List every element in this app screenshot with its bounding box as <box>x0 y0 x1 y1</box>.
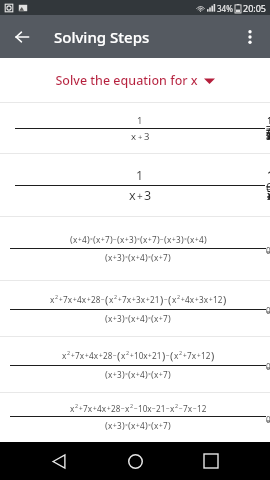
button[interactable]: Back <box>42 444 76 478</box>
staticText: + <box>101 235 105 244</box>
button[interactable]: 1 <box>0 103 270 153</box>
staticText: − <box>113 235 117 244</box>
staticText: + <box>159 314 163 323</box>
staticText: ( <box>128 251 131 264</box>
button[interactable]: More options <box>234 21 266 53</box>
staticText: 3 <box>117 313 122 324</box>
staticText: 7 <box>163 252 168 263</box>
staticText: x <box>131 369 136 380</box>
staticText: ) <box>122 368 125 381</box>
staticText: ) <box>211 348 215 363</box>
staticText: 4x <box>97 403 107 414</box>
staticText: ) <box>168 419 171 432</box>
staticText: − <box>113 351 117 360</box>
staticText: 12 <box>201 350 211 361</box>
staticText: × <box>137 236 140 243</box>
staticText: ( <box>105 251 108 264</box>
staticText: x <box>131 420 136 431</box>
staticText: ) <box>145 251 148 264</box>
staticText: + <box>148 235 152 244</box>
staticText: + <box>113 421 117 430</box>
staticText: 12 <box>197 403 207 414</box>
staticText: + <box>195 235 199 244</box>
staticText: + <box>197 351 201 360</box>
staticText: + <box>99 351 103 360</box>
staticText: × <box>148 371 151 378</box>
staticText: 2 <box>55 293 59 300</box>
button[interactable]: Solve the equation for x <box>0 58 270 102</box>
staticText: x <box>143 234 148 245</box>
staticText: + <box>113 253 117 262</box>
staticText: 34% <box>217 3 233 14</box>
staticText: 4 <box>199 234 204 245</box>
button[interactable]: 1 <box>0 154 270 216</box>
staticText: + <box>159 421 163 430</box>
staticText: ( <box>168 292 172 307</box>
staticText: ) <box>160 292 164 307</box>
staticText: x <box>131 252 136 263</box>
staticText: + <box>79 404 83 413</box>
staticText: 3 <box>117 252 122 263</box>
staticText: 2 <box>67 349 71 356</box>
staticText: 21 <box>152 350 162 361</box>
staticText: 7 <box>105 234 110 245</box>
button[interactable]: Home <box>118 444 152 478</box>
staticText: × <box>125 371 128 378</box>
button[interactable]: Back <box>6 21 38 53</box>
staticText: x <box>131 313 136 324</box>
staticText: + <box>136 370 140 379</box>
staticText: x <box>174 350 179 361</box>
staticText: + <box>113 370 117 379</box>
staticText: x <box>50 294 55 305</box>
staticText: + <box>137 189 143 203</box>
staticText: ) <box>204 233 207 246</box>
staticText: + <box>107 404 111 413</box>
staticText: 28 <box>103 350 113 361</box>
staticText: x <box>62 350 67 361</box>
staticText: x <box>129 187 136 204</box>
button[interactable]: ( <box>0 217 270 280</box>
staticText: − <box>166 351 170 360</box>
staticText: 4x <box>89 350 99 361</box>
staticText: − <box>121 404 125 413</box>
staticText: 3x <box>136 294 146 305</box>
staticText: + <box>159 253 163 262</box>
button[interactable]: x <box>0 393 270 442</box>
staticText: x <box>108 420 113 431</box>
staticText: ) <box>223 292 227 307</box>
button[interactable]: x <box>0 337 270 392</box>
button[interactable]: Recent apps <box>194 444 228 478</box>
staticText: ) <box>110 233 113 246</box>
staticText: ( <box>128 419 131 432</box>
staticText: × <box>184 236 187 243</box>
staticText: − <box>164 295 168 304</box>
staticText: 4x <box>185 294 195 305</box>
staticText: × <box>125 254 128 261</box>
staticText: x <box>109 294 114 305</box>
staticText: 4 <box>140 420 145 431</box>
staticText: 10x <box>134 350 148 361</box>
staticText: ( <box>140 233 143 246</box>
button[interactable]: x <box>0 281 270 336</box>
staticText: x <box>131 130 137 143</box>
staticText: ( <box>105 419 108 432</box>
staticText: × <box>125 315 128 322</box>
staticText: x <box>73 234 78 245</box>
staticText: + <box>71 351 75 360</box>
staticText: 4 <box>140 313 145 324</box>
staticText: x <box>172 294 177 305</box>
staticText: ( <box>164 233 167 246</box>
staticText: + <box>130 351 134 360</box>
staticText: ) <box>162 348 166 363</box>
staticText: 2 <box>175 402 179 409</box>
staticText: + <box>87 295 91 304</box>
staticText: ) <box>145 419 148 432</box>
staticText: + <box>183 351 187 360</box>
staticText: x <box>70 403 75 414</box>
staticText: ) <box>134 233 137 246</box>
staticText: + <box>136 421 140 430</box>
staticText: 3x <box>199 294 209 305</box>
staticText: ) <box>168 312 171 325</box>
staticText: ( <box>105 292 109 307</box>
staticText: 3 <box>144 130 150 143</box>
